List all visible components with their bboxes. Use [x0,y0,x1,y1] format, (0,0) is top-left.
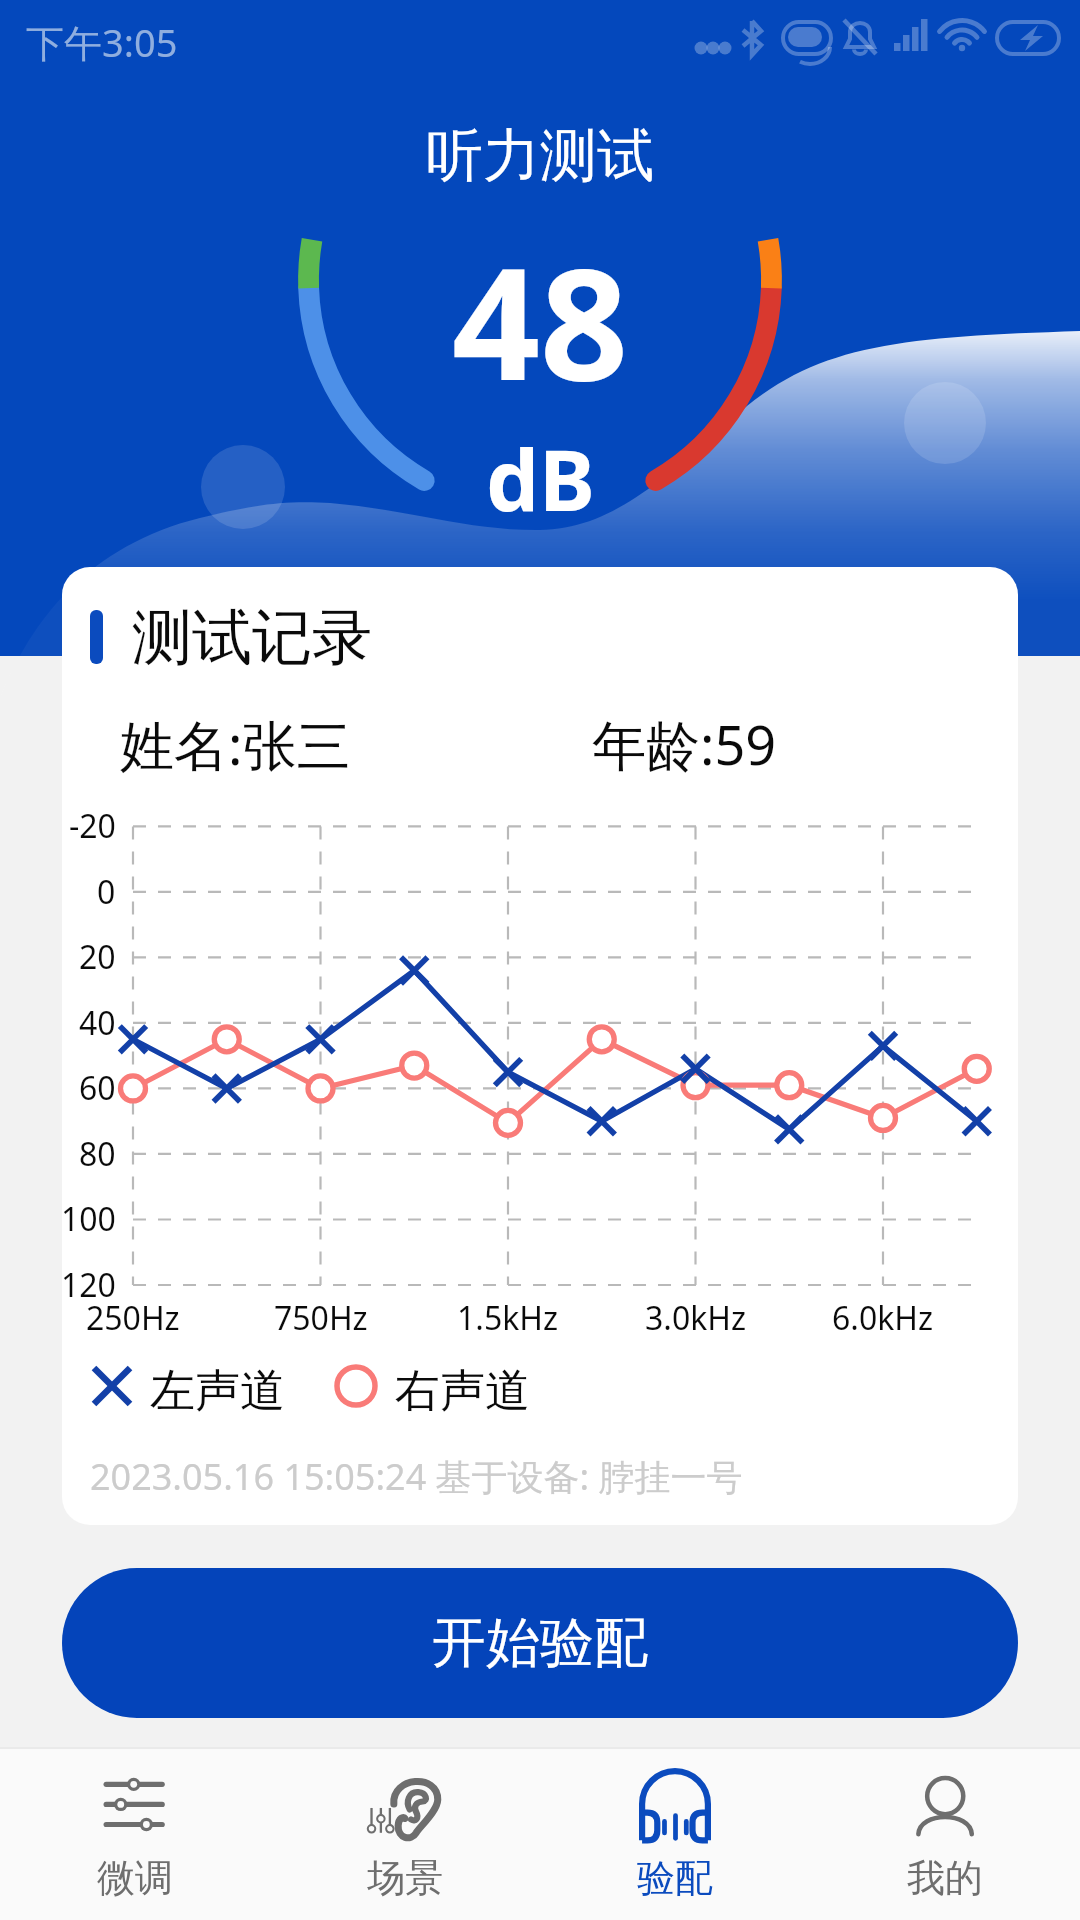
staticText: 左声道 [150,1363,285,1420]
button[interactable]: 场景 [270,1749,540,1920]
staticText: 下午3:05 [26,16,178,68]
staticText: -20 [69,804,116,848]
staticText: 40 [79,1001,116,1045]
staticText: 微调 [97,1854,173,1902]
staticText: 250Hz [86,1296,180,1340]
staticText: 姓名:张三 [120,707,351,781]
staticText: 80 [79,1132,116,1176]
staticText: dB [486,421,595,535]
staticText: 右声道 [395,1363,530,1420]
staticText: 120 [62,1263,116,1307]
button[interactable]: 开始验配 [62,1568,1018,1718]
staticText: 20 [79,935,116,979]
staticText: 750Hz [274,1296,368,1340]
staticText: 听力测试 [426,120,654,192]
staticText: 3.0kHz [645,1296,747,1340]
staticText: 100 [62,1197,116,1241]
staticText: 0 [97,870,116,914]
staticText: 年龄:59 [592,707,777,781]
staticText: 测试记录 [132,600,372,676]
staticText: 1.5kHz [457,1296,559,1340]
staticText: 48 [452,215,629,425]
button[interactable]: 我的 [810,1749,1080,1920]
staticText: 我的 [907,1854,983,1902]
button[interactable]: 验配 [540,1749,810,1920]
staticText: 场景 [367,1854,443,1902]
button[interactable]: 微调 [0,1749,270,1920]
staticText: 验配 [637,1854,713,1902]
staticText: 6.0kHz [832,1296,934,1340]
staticText: 开始验配 [432,1609,648,1677]
staticText: 60 [79,1066,116,1110]
staticText: 2023.05.16 15:05:24 基于设备: 脖挂一号 [90,1452,743,1501]
